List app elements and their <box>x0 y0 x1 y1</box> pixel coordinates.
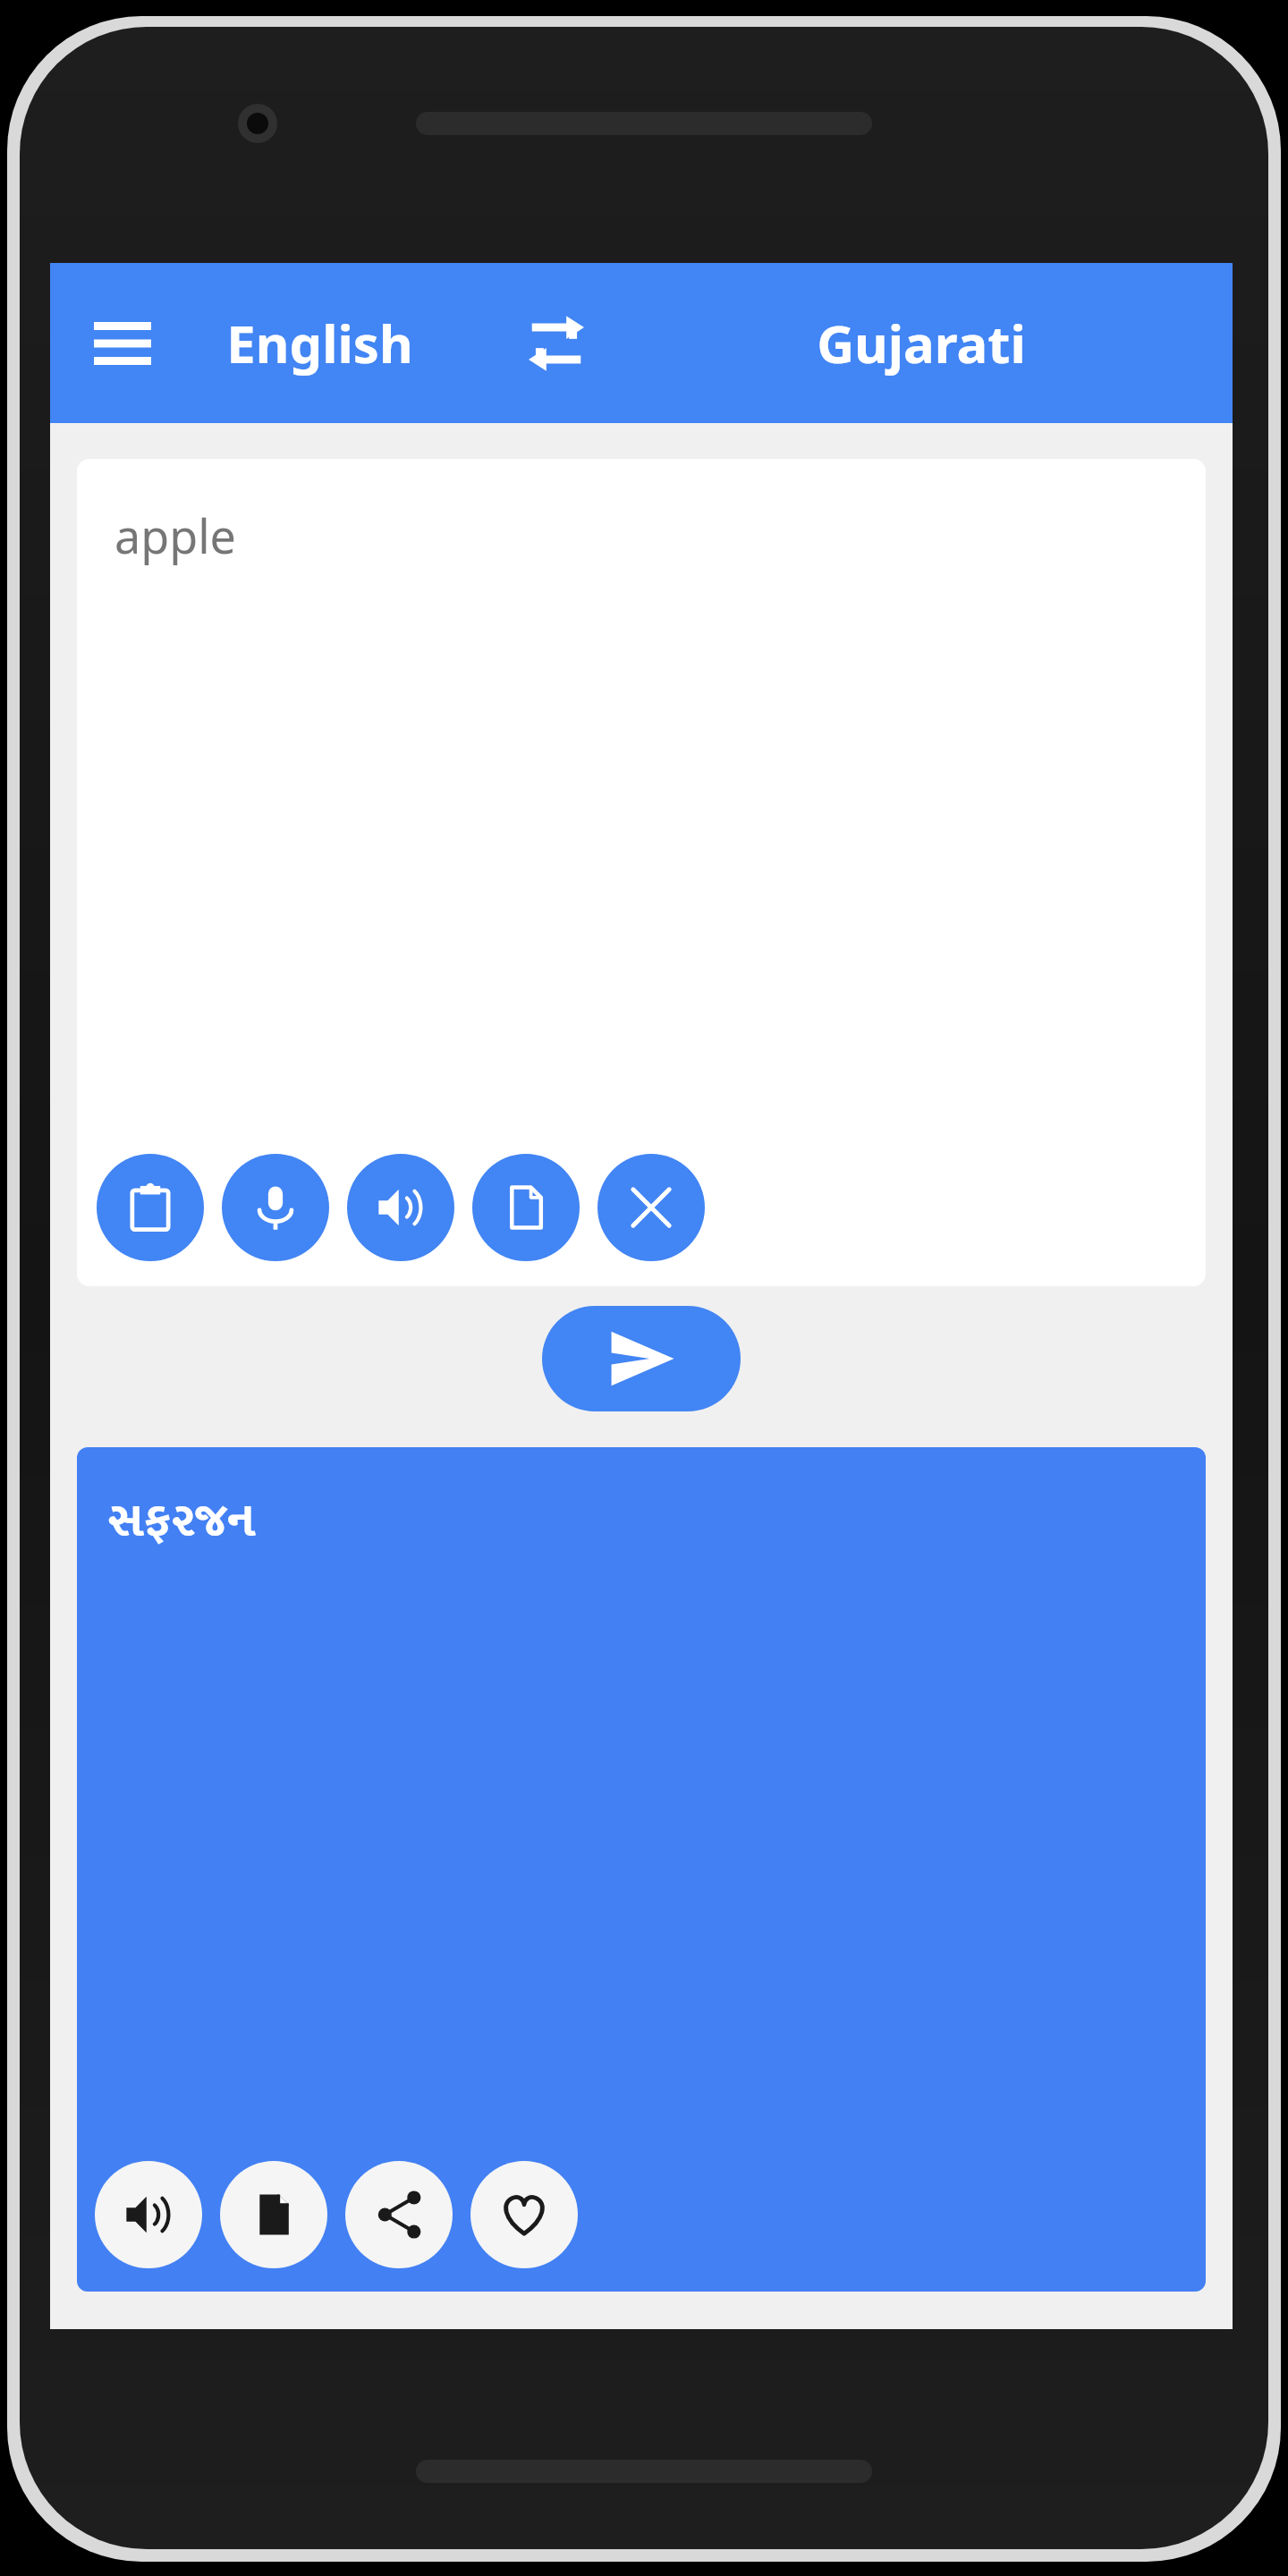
button[interactable]: Gujarati <box>646 263 1233 423</box>
button[interactable]: Copy translation <box>220 2161 327 2268</box>
button[interactable]: Copy text <box>472 1154 580 1261</box>
button[interactable]: English <box>172 263 467 423</box>
button[interactable]: સફરજન <box>77 1447 1206 2292</box>
button[interactable]: apple <box>77 459 1206 1286</box>
button[interactable]: Open navigation menu <box>73 294 172 393</box>
staticText: apple <box>114 504 236 567</box>
staticText: English <box>226 308 413 378</box>
button[interactable]: Translate <box>542 1306 741 1411</box>
button[interactable]: Swap languages <box>467 263 646 423</box>
staticText: સફરજન <box>107 1481 255 1562</box>
button[interactable]: Listen <box>347 1154 454 1261</box>
button[interactable]: Paste <box>97 1154 204 1261</box>
button[interactable]: Clear text <box>597 1154 705 1261</box>
button[interactable]: Voice input <box>222 1154 329 1261</box>
staticText: Gujarati <box>817 308 1026 378</box>
button[interactable]: Add to favourites <box>470 2161 578 2268</box>
button[interactable]: Share translation <box>345 2161 453 2268</box>
button[interactable]: Listen to translation <box>95 2161 202 2268</box>
